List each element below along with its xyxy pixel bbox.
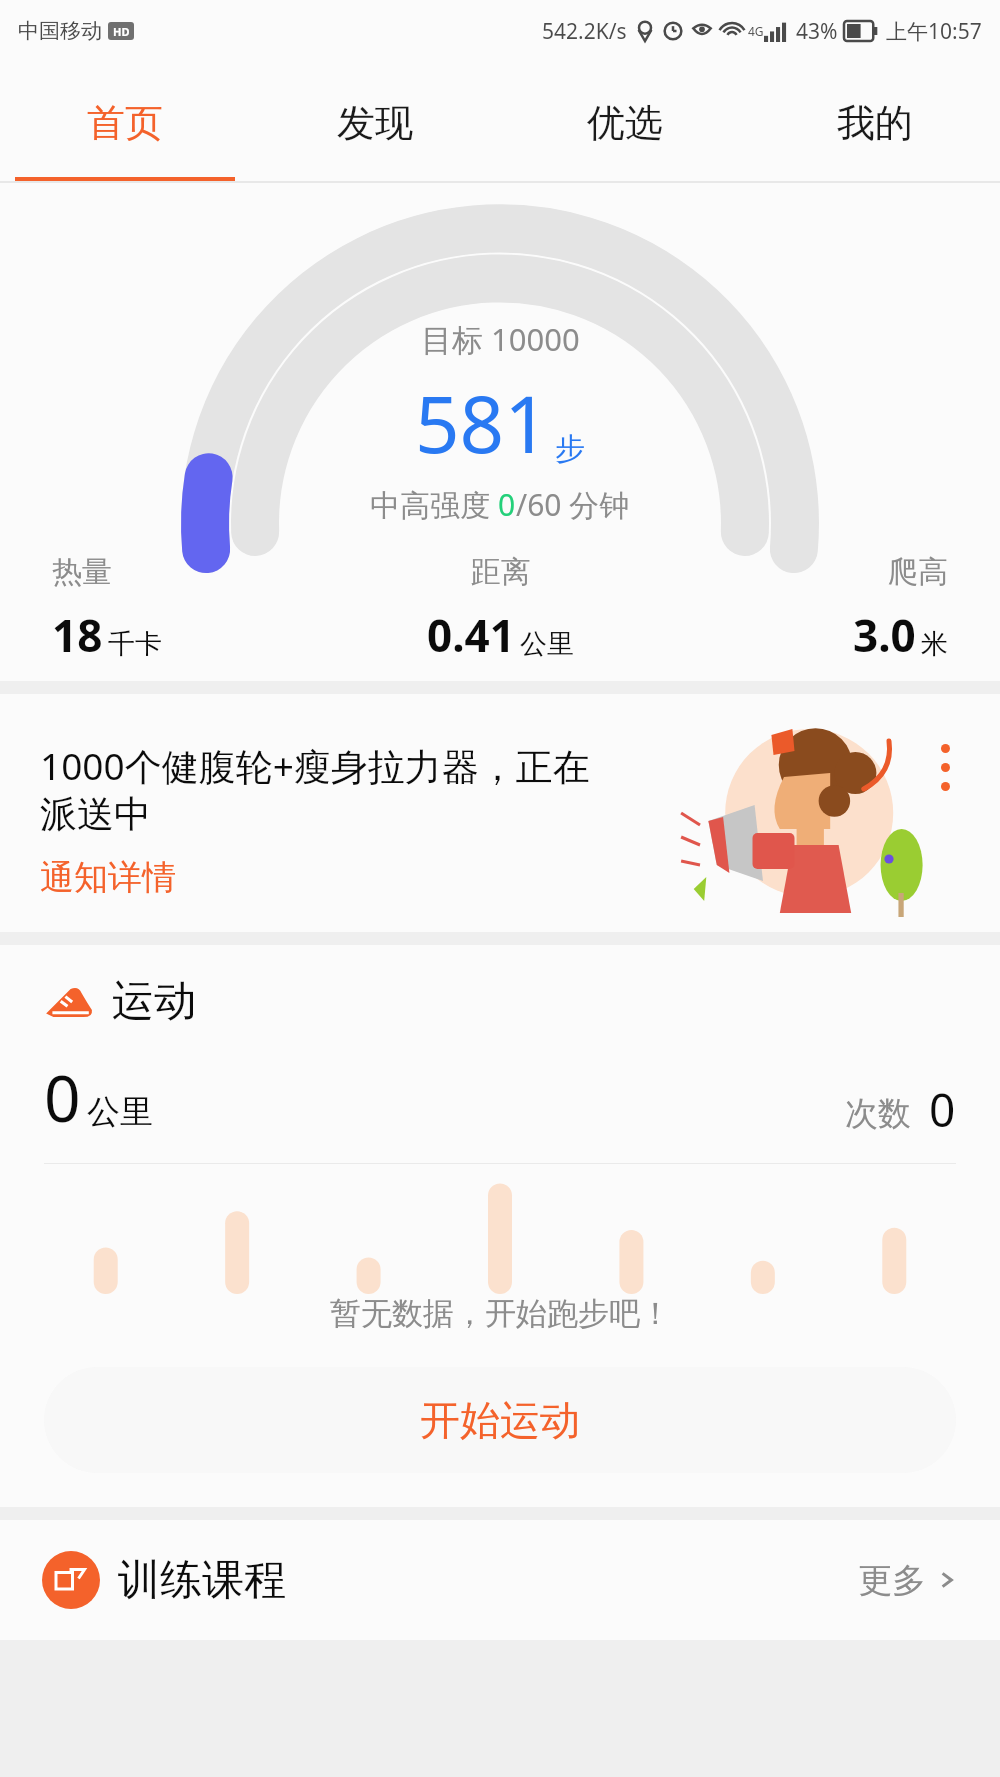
staticText: 3.0 bbox=[853, 605, 916, 665]
staticText: /60 分钟 bbox=[516, 484, 630, 525]
staticText: 0 bbox=[44, 1054, 81, 1141]
staticText: 热量 bbox=[52, 553, 112, 591]
staticText: 4G bbox=[748, 23, 764, 39]
staticText: 0 bbox=[929, 1078, 956, 1141]
staticText: 更多 bbox=[858, 1559, 926, 1602]
staticText: 训练课程 bbox=[118, 1554, 286, 1607]
staticText: 发现 bbox=[337, 99, 413, 147]
staticText: 优选 bbox=[587, 99, 663, 147]
staticText: 542.2K/s bbox=[542, 17, 627, 46]
staticText: 公里 bbox=[520, 627, 574, 661]
staticText: 次数 bbox=[845, 1093, 911, 1135]
staticText: 派送中 bbox=[40, 791, 151, 838]
staticText: 0 bbox=[498, 484, 516, 525]
staticText: 运动 bbox=[112, 975, 196, 1028]
staticText: HD bbox=[113, 24, 130, 39]
staticText: 暂无数据，开始跑步吧！ bbox=[330, 1294, 671, 1333]
button[interactable]: 首页 bbox=[0, 62, 250, 183]
button[interactable]: 热量 bbox=[12, 553, 338, 665]
other: Sport bbox=[42, 984, 94, 1020]
button[interactable]: 训练课程 bbox=[42, 1520, 958, 1640]
staticText: 公里 bbox=[87, 1091, 153, 1133]
staticText: 1000个健腹轮+瘦身拉力器，正在 bbox=[40, 740, 590, 791]
staticText: 上午10:57 bbox=[886, 17, 982, 46]
staticText: 千卡 bbox=[108, 627, 162, 661]
button[interactable]: 发现 bbox=[250, 62, 500, 183]
staticText: 目标 10000 bbox=[421, 318, 580, 360]
button[interactable]: More options bbox=[933, 736, 958, 799]
button[interactable]: 1000个健腹轮+瘦身拉力器，正在 bbox=[0, 694, 1000, 932]
staticText: 距离 bbox=[471, 553, 531, 591]
staticText: 我的 bbox=[837, 99, 913, 147]
button[interactable]: 优选 bbox=[500, 62, 750, 183]
staticText: 0.41 bbox=[427, 605, 515, 665]
staticText: 通知详情 bbox=[40, 856, 176, 899]
button[interactable]: 距离 bbox=[338, 553, 663, 665]
button[interactable]: Sport bbox=[42, 975, 196, 1028]
button[interactable]: 开始运动 bbox=[44, 1367, 956, 1473]
staticText: 中国移动 bbox=[18, 18, 102, 44]
staticText: 开始运动 bbox=[420, 1395, 580, 1445]
staticText: 步 bbox=[555, 430, 585, 468]
staticText: 首页 bbox=[87, 99, 163, 147]
staticText: 43% bbox=[796, 17, 838, 46]
staticText: 18 bbox=[52, 605, 103, 665]
staticText: 581 bbox=[415, 370, 549, 476]
staticText: 中高强度 bbox=[370, 484, 498, 525]
staticText: 米 bbox=[921, 627, 948, 661]
staticText: 爬高 bbox=[888, 553, 948, 591]
button[interactable]: 爬高 bbox=[663, 553, 988, 665]
button[interactable]: 我的 bbox=[750, 62, 1000, 183]
